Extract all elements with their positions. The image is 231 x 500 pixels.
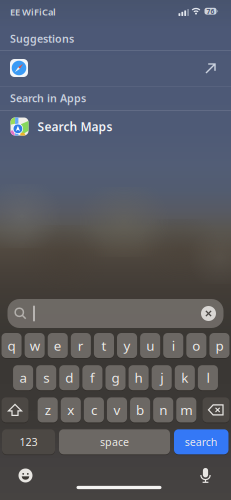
button[interactable]: search (174, 429, 228, 454)
staticText: d (65, 369, 73, 386)
staticText: k (181, 369, 188, 386)
staticText: p (215, 337, 223, 354)
button[interactable]: w (25, 333, 45, 358)
button[interactable]: n (153, 397, 173, 422)
staticText: n (159, 401, 167, 419)
button[interactable]: k (175, 365, 195, 390)
staticText: x (67, 401, 74, 419)
button[interactable]: a (13, 365, 33, 390)
button[interactable] (193, 463, 217, 487)
button[interactable] (1, 397, 28, 422)
staticText: h (135, 369, 143, 386)
button[interactable]: y (117, 333, 137, 358)
staticText: v (113, 401, 120, 419)
button[interactable]: g (105, 365, 126, 390)
button[interactable]: t (94, 333, 114, 358)
staticText: i (172, 337, 175, 354)
staticText: 123 (19, 435, 37, 449)
staticText: j (160, 369, 163, 386)
staticText: s (43, 369, 49, 386)
staticText: b (136, 401, 144, 419)
staticText: EE WiFiCal (10, 6, 56, 18)
button[interactable]: c (84, 397, 104, 422)
staticText: Search in Apps (10, 91, 86, 105)
button[interactable]: p (209, 333, 229, 358)
staticText: g (111, 369, 119, 386)
staticText: q (8, 337, 16, 354)
button[interactable]: r (71, 333, 91, 358)
button[interactable]: f (82, 365, 102, 390)
button[interactable]: i (163, 333, 183, 358)
staticText: y (123, 337, 130, 354)
button[interactable]: x (61, 397, 81, 422)
staticText: 76 (206, 7, 214, 16)
button[interactable]: b (130, 397, 150, 422)
button[interactable]: m (176, 397, 196, 422)
button[interactable]: z (38, 397, 58, 422)
staticText: space (100, 435, 129, 449)
button[interactable]: 123 (2, 429, 55, 454)
button[interactable] (0, 51, 231, 85)
button[interactable]: e (48, 333, 68, 358)
button[interactable] (7, 299, 223, 328)
staticText: e (54, 337, 62, 354)
button[interactable]: h (129, 365, 149, 390)
staticText: c (91, 401, 97, 419)
button[interactable]: j (152, 365, 172, 390)
staticText: Suggestions (10, 31, 74, 46)
button[interactable]: o (186, 333, 206, 358)
button[interactable]: Search Maps (0, 111, 231, 141)
button[interactable]: d (59, 365, 79, 390)
staticText: r (78, 337, 84, 354)
staticText: search (185, 435, 218, 449)
button[interactable]: s (36, 365, 56, 390)
button[interactable]: space (59, 429, 170, 454)
staticText: f (90, 369, 95, 386)
staticText: o (192, 337, 200, 354)
staticText: a (20, 369, 27, 386)
staticText: t (101, 337, 106, 354)
button[interactable]: q (1, 333, 22, 358)
staticText: u (146, 337, 154, 354)
button[interactable] (13, 463, 37, 487)
staticText: z (45, 401, 51, 419)
button[interactable]: l (198, 365, 218, 390)
staticText: Search Maps (37, 118, 112, 134)
button[interactable]: v (107, 397, 127, 422)
button[interactable] (202, 397, 229, 422)
staticText: w (30, 337, 40, 354)
staticText: l (206, 369, 209, 386)
staticText: m (180, 401, 192, 419)
button[interactable]: u (140, 333, 160, 358)
